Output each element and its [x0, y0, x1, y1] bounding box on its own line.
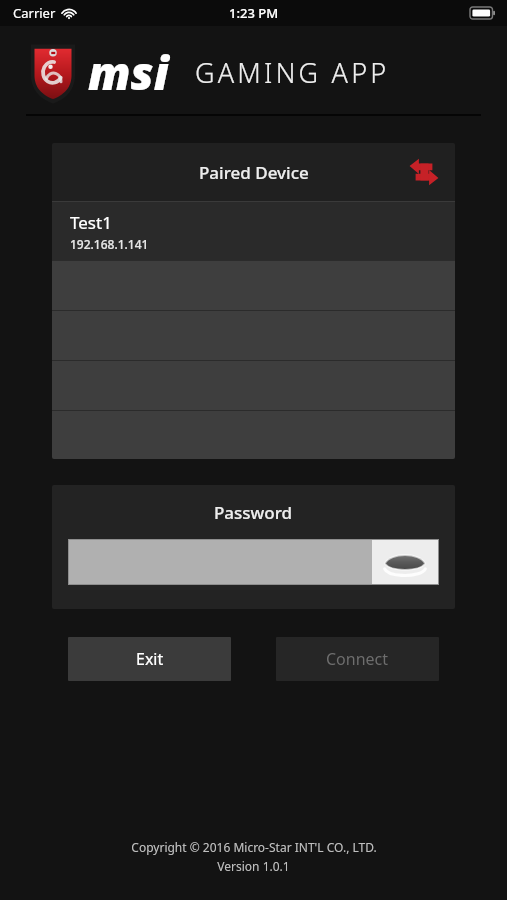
button[interactable]: Refresh paired devices	[403, 151, 445, 193]
button[interactable]: Test1	[52, 202, 455, 260]
staticText: 1:23 PM	[229, 4, 279, 22]
staticText: Exit	[136, 648, 164, 670]
button[interactable]: Paired Device	[52, 143, 455, 201]
staticText: Version 1.0.1	[217, 858, 290, 874]
staticText: GAMING APP	[195, 54, 390, 91]
staticText: msi	[88, 41, 169, 104]
staticText: Copyright © 2016 Micro-Star INT'L CO., L…	[131, 839, 377, 855]
staticText: Connect	[326, 648, 389, 670]
staticText: 192.168.1.141	[70, 236, 149, 252]
staticText: Carrier	[13, 4, 56, 22]
button[interactable]: Show password	[372, 540, 438, 584]
staticText: Test1	[70, 211, 112, 234]
button[interactable]: Connect	[276, 637, 439, 681]
staticText: Password	[214, 501, 293, 524]
staticText: Paired Device	[199, 161, 309, 184]
button[interactable]: Show password	[69, 540, 438, 584]
button[interactable]: Exit	[68, 637, 231, 681]
